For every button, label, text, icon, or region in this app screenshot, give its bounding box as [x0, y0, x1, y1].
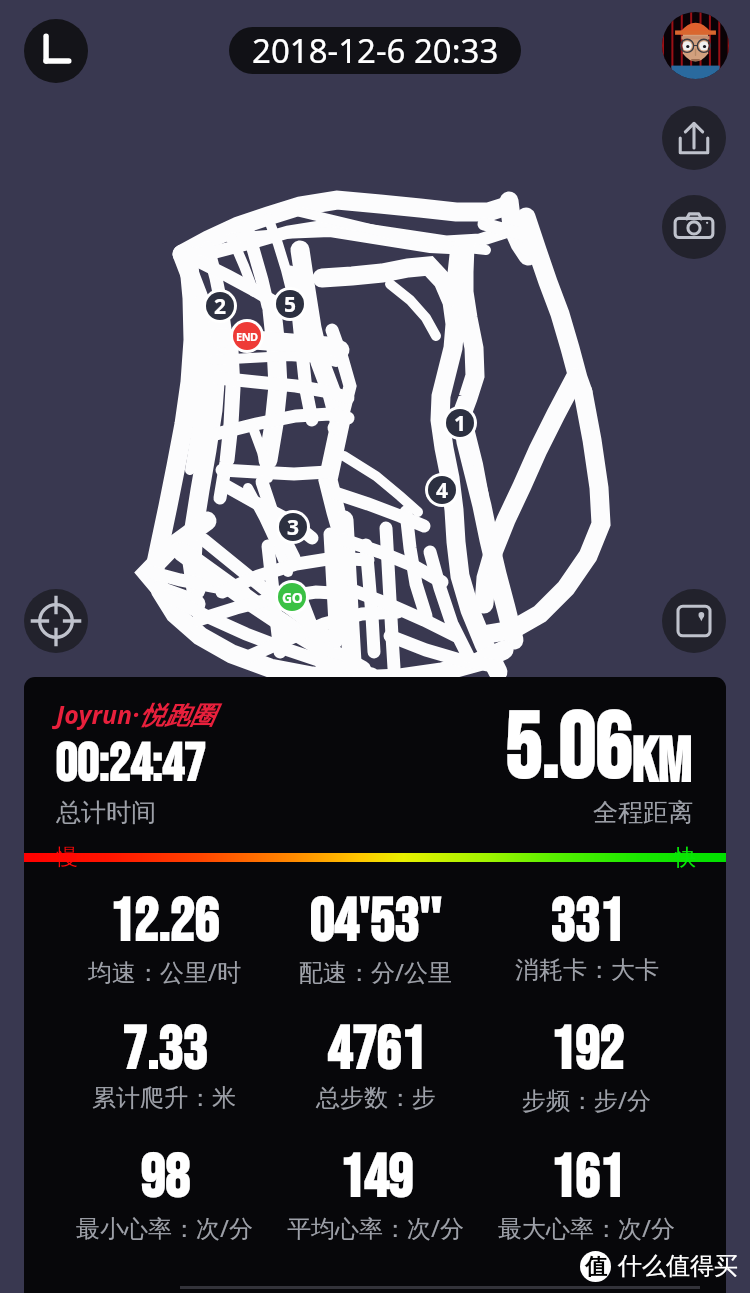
- staticText: 累计爬升：米: [92, 1083, 236, 1113]
- staticText: END: [236, 329, 258, 344]
- staticText: 2: [214, 292, 227, 320]
- staticText: 2018-12-6 20:33: [252, 28, 499, 73]
- staticText: 平均心率：次/分: [287, 1211, 464, 1244]
- staticText: 3: [287, 513, 300, 541]
- staticText: 最小心率：次/分: [76, 1211, 253, 1244]
- staticText: 98: [140, 1142, 189, 1215]
- button[interactable]: Back: [24, 19, 88, 83]
- staticText: 192: [550, 1014, 624, 1087]
- staticText: 什么值得买: [618, 1251, 738, 1281]
- staticText: 04'53'': [309, 886, 442, 959]
- staticText: 5: [284, 290, 297, 318]
- staticText: 全程距离: [593, 797, 693, 828]
- staticText: 00:24:47: [55, 732, 205, 797]
- button[interactable]: Camera: [662, 195, 726, 259]
- staticText: 快: [674, 844, 696, 872]
- button[interactable]: 2018-12-6 20:33: [229, 27, 521, 74]
- staticText: 步频：步/分: [522, 1083, 651, 1116]
- staticText: 7.33: [122, 1014, 207, 1087]
- staticText: 最大心率：次/分: [498, 1211, 675, 1244]
- button[interactable]: Share: [662, 106, 726, 170]
- button[interactable]: Profile: [662, 12, 729, 79]
- staticText: 慢: [56, 843, 78, 871]
- staticText: 配速：分/公里: [299, 955, 452, 988]
- staticText: KM: [631, 725, 691, 801]
- button[interactable]: Locate: [24, 589, 88, 653]
- staticText: 4: [436, 476, 449, 504]
- staticText: 总计时间: [56, 797, 156, 828]
- staticText: 均速：公里/时: [88, 955, 241, 988]
- staticText: GO: [282, 588, 303, 607]
- staticText: 161: [550, 1142, 624, 1215]
- staticText: 1: [454, 409, 467, 437]
- staticText: 总步数：步: [316, 1083, 436, 1113]
- staticText: 4761: [327, 1014, 425, 1087]
- staticText: 12.26: [109, 886, 219, 959]
- button[interactable]: Map layer: [662, 589, 726, 653]
- staticText: 值: [585, 1253, 607, 1281]
- staticText: 149: [339, 1142, 413, 1215]
- staticText: 5.06: [504, 696, 631, 805]
- staticText: Joyrun·悦跑圈: [56, 697, 215, 731]
- staticText: 消耗卡：大卡: [515, 955, 659, 985]
- staticText: 331: [550, 886, 624, 959]
